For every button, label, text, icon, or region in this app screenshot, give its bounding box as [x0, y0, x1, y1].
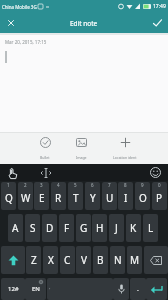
button[interactable] [113, 278, 129, 300]
staticText: O [139, 191, 147, 205]
button[interactable]: S [25, 214, 40, 242]
staticText: EN [32, 285, 40, 293]
button[interactable]: K [126, 214, 141, 242]
staticText: K [130, 221, 137, 235]
button[interactable]: Image [66, 134, 96, 162]
staticText: 0 [158, 182, 161, 188]
button[interactable]: G [76, 214, 91, 242]
staticText: J [115, 221, 118, 235]
staticText: M [130, 253, 140, 267]
button[interactable] [146, 278, 167, 300]
staticText: E [39, 191, 45, 205]
button[interactable] [146, 165, 164, 180]
staticText: 1 [7, 182, 10, 188]
button[interactable]: L [143, 214, 158, 242]
button[interactable]: 4 [51, 182, 66, 210]
button[interactable]: J [109, 214, 124, 242]
button[interactable]: F [59, 214, 74, 242]
button[interactable]: H [92, 214, 107, 242]
button[interactable]: 3 [34, 182, 49, 210]
button[interactable]: B [93, 246, 108, 274]
staticText: 7 [108, 182, 111, 188]
button[interactable]: 2 [18, 182, 33, 210]
staticText: F [64, 221, 70, 235]
button[interactable]: Bullet [30, 134, 60, 162]
staticText: I [124, 191, 128, 205]
button[interactable]: M [127, 246, 142, 274]
staticText: D [46, 221, 54, 235]
button[interactable]: Z [26, 246, 41, 274]
button[interactable]: 9 [135, 182, 150, 210]
button[interactable] [3, 166, 23, 181]
staticText: L [148, 221, 154, 235]
staticText: G [80, 221, 88, 235]
staticText: 8 [124, 182, 127, 188]
staticText: A [12, 221, 19, 235]
button[interactable]: 1 [1, 182, 16, 210]
staticText: Q [5, 191, 13, 205]
staticText: N [114, 253, 122, 267]
staticText: Bullet [40, 155, 50, 160]
button[interactable]: N [110, 246, 125, 274]
button[interactable]: 8 [118, 182, 133, 210]
button[interactable] [1, 246, 25, 274]
staticText: Edit note [70, 19, 98, 28]
staticText: 6 [91, 182, 94, 188]
staticText: Image [76, 155, 87, 160]
button[interactable]: 6 [85, 182, 100, 210]
staticText: 4 [57, 182, 60, 188]
staticText: B [97, 253, 104, 267]
staticText: China Mobile 3G [2, 4, 37, 10]
staticText: 12# [8, 285, 19, 293]
staticText: W [21, 191, 31, 205]
button[interactable]: D [42, 214, 57, 242]
button[interactable] [146, 13, 168, 33]
button[interactable]: . [130, 278, 146, 300]
button[interactable] [36, 165, 56, 180]
button[interactable]: 7 [102, 182, 117, 210]
button[interactable]: C [60, 246, 75, 274]
staticText: X [48, 253, 54, 267]
staticText: 5 [74, 182, 77, 188]
button[interactable] [0, 13, 22, 33]
staticText: H [96, 221, 104, 235]
staticText: 17:49 [153, 3, 166, 10]
button[interactable]: 0 [152, 182, 167, 210]
staticText: 2 [24, 182, 27, 188]
button[interactable] [144, 246, 168, 274]
button[interactable]: V [76, 246, 91, 274]
button[interactable]: 5 [68, 182, 83, 210]
button[interactable]: 12# [1, 278, 25, 300]
staticText: V [81, 253, 87, 267]
staticText: R [55, 191, 62, 205]
staticText: T [73, 191, 79, 205]
staticText: Y [90, 191, 96, 205]
staticText: . [137, 284, 139, 294]
staticText: U [106, 191, 114, 205]
staticText: Z [31, 253, 37, 267]
button[interactable]: Location ident [104, 134, 146, 162]
button[interactable]: A [8, 214, 23, 242]
staticText: 3 [40, 182, 43, 188]
staticText: 9 [141, 182, 144, 188]
button[interactable]: X [43, 246, 58, 274]
staticText: Location ident [113, 155, 137, 160]
staticText: , [49, 283, 51, 291]
button[interactable]: EN [25, 278, 46, 300]
staticText: P [156, 191, 163, 205]
staticText: S [30, 221, 36, 235]
staticText: Mar 20, 2015, 17:15 [5, 39, 47, 45]
staticText: C [64, 253, 71, 267]
